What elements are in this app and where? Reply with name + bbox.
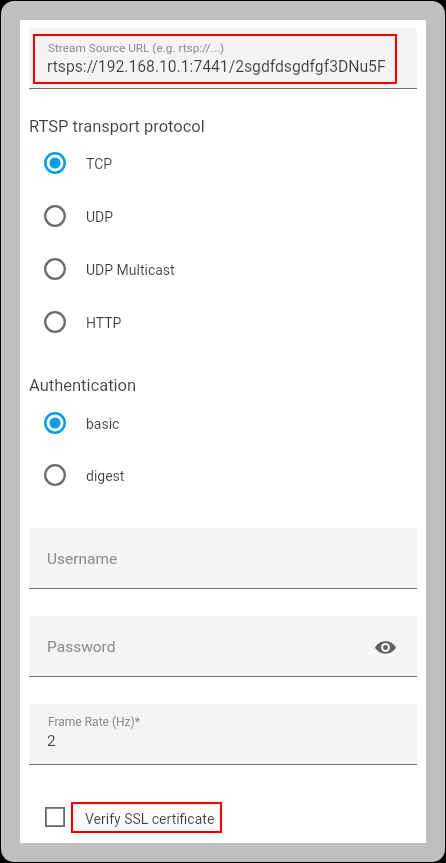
- button[interactable]: Frame Rate (Hz)*: [29, 704, 417, 765]
- staticText: Verify SSL certificate: [85, 811, 215, 827]
- button[interactable]: HTTP: [20, 296, 426, 348]
- button[interactable]: Show password: [369, 631, 401, 663]
- button[interactable]: basic: [20, 397, 426, 449]
- button[interactable]: Stream Source URL (e.g. rtsp://...): [29, 28, 417, 89]
- staticText: Frame Rate (Hz)*: [48, 715, 140, 729]
- staticText: basic: [86, 416, 120, 432]
- staticText: Username: [47, 550, 118, 568]
- staticText: HTTP: [86, 315, 122, 331]
- button[interactable]: Username: [29, 528, 417, 589]
- button[interactable]: Password: [29, 616, 417, 677]
- staticText: Authentication: [29, 376, 137, 395]
- staticText: digest: [86, 468, 125, 484]
- button[interactable]: UDP Multicast: [20, 243, 426, 295]
- staticText: rtsps://192.168.10.1:7441/2sgdfdsgdfgf3D…: [47, 57, 386, 75]
- staticText: UDP: [86, 209, 114, 225]
- staticText: RTSP transport protocol: [29, 117, 205, 136]
- staticText: Password: [47, 638, 116, 656]
- button[interactable]: Verify SSL certificate: [20, 795, 426, 839]
- button[interactable]: UDP: [20, 190, 426, 242]
- staticText: UDP Multicast: [86, 262, 175, 278]
- button[interactable]: TCP: [20, 137, 426, 189]
- staticText: 2: [47, 732, 56, 750]
- staticText: TCP: [86, 156, 113, 172]
- button[interactable]: digest: [20, 449, 426, 501]
- staticText: Stream Source URL (e.g. rtsp://...): [48, 41, 225, 55]
